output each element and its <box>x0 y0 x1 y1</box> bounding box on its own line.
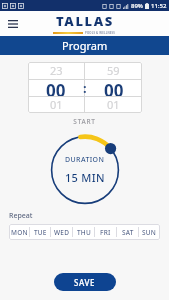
staticText: 00 <box>104 79 124 96</box>
staticText: : <box>83 79 87 97</box>
staticText: SAT <box>122 228 134 237</box>
button[interactable]: FRI <box>95 224 116 240</box>
button[interactable]: TUE <box>30 224 50 240</box>
staticText: 89% <box>131 2 143 10</box>
button[interactable]: THU <box>73 224 94 240</box>
staticText: 23 <box>50 63 63 78</box>
staticText: WED <box>54 228 70 237</box>
staticText: THU <box>77 228 91 237</box>
staticText: Repeat <box>9 211 33 221</box>
staticText: DURATION <box>65 155 105 165</box>
staticText: 01 <box>50 97 63 112</box>
staticText: FRI <box>100 228 111 237</box>
staticText: 11:52 <box>151 2 167 10</box>
button[interactable]: 59 <box>85 62 142 79</box>
staticText: SUN <box>142 228 157 237</box>
staticText: 01 <box>107 97 120 112</box>
button[interactable]: 01 <box>85 96 142 113</box>
staticText: 15 MIN <box>65 170 105 185</box>
staticText: START <box>0 117 169 126</box>
staticText: Program <box>62 38 108 53</box>
staticText: POOLS & WELLNESS <box>85 31 116 35</box>
staticText: 00 <box>46 79 66 96</box>
button[interactable]: WED <box>51 224 72 240</box>
staticText: TALLAS <box>56 12 114 30</box>
staticText: 59 <box>107 63 120 78</box>
button[interactable]: 00 <box>85 79 142 96</box>
button[interactable]: SUN <box>139 224 160 240</box>
staticText: SAVE <box>74 277 96 288</box>
button[interactable]: Open navigation menu <box>4 15 22 33</box>
button[interactable]: SAT <box>117 224 138 240</box>
staticText: MON <box>11 228 28 237</box>
button[interactable]: 23 <box>28 62 84 79</box>
button[interactable]: 01 <box>28 96 84 113</box>
button[interactable]: Adjust duration <box>46 131 124 209</box>
button[interactable]: SAVE <box>54 273 116 291</box>
button[interactable]: MON <box>9 224 29 240</box>
staticText: TUE <box>34 228 47 237</box>
button[interactable]: 00 <box>28 79 84 96</box>
